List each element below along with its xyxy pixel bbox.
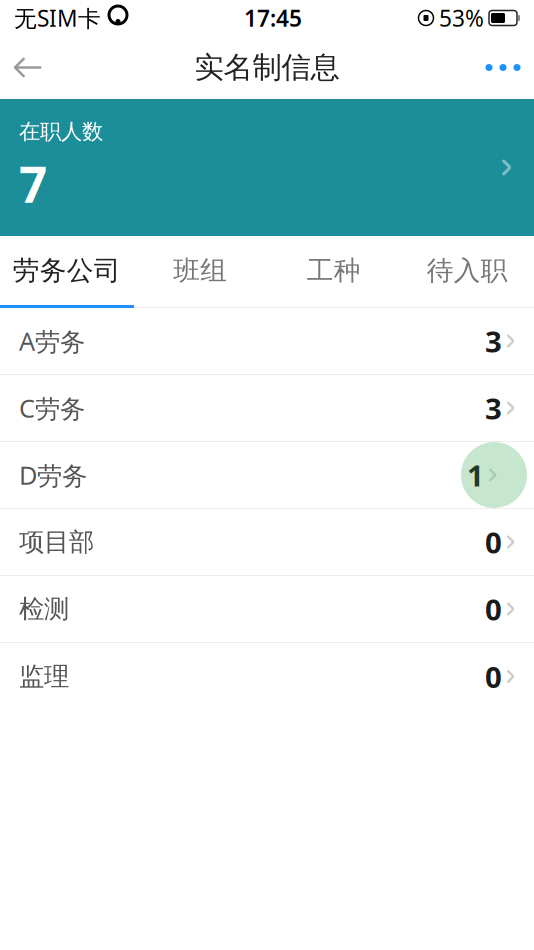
staticText: 3	[485, 321, 502, 360]
button[interactable]: 监理	[0, 643, 534, 710]
staticText: 检测	[19, 593, 69, 624]
staticText: C劳务	[19, 391, 85, 425]
staticText: 17:45	[244, 3, 302, 33]
button[interactable]: 返回	[0, 36, 56, 98]
staticText: 监理	[19, 661, 69, 692]
staticText: 无SIM卡	[14, 3, 101, 33]
button[interactable]: 待入职	[400, 236, 534, 305]
staticText: 在职人数	[19, 119, 103, 145]
staticText: 项目部	[19, 526, 94, 557]
staticText: 0	[485, 522, 502, 561]
staticText: 0	[485, 589, 502, 628]
button[interactable]: 项目部	[0, 509, 534, 576]
staticText: 班组	[173, 254, 227, 287]
staticText: 劳务公司	[13, 254, 121, 287]
button[interactable]: D劳务	[0, 442, 534, 509]
staticText: 3	[485, 388, 502, 427]
button[interactable]: 班组	[133, 236, 267, 305]
staticText: 工种	[307, 254, 361, 287]
staticText: 7	[19, 151, 47, 216]
button[interactable]: C劳务	[0, 375, 534, 442]
button[interactable]: 在职人数	[0, 99, 534, 236]
staticText: A劳务	[19, 324, 85, 358]
button[interactable]: 更多	[472, 36, 534, 98]
staticText: 待入职	[427, 254, 508, 287]
staticText: 1	[467, 455, 484, 494]
button[interactable]: A劳务	[0, 308, 534, 375]
staticText: D劳务	[19, 458, 87, 492]
staticText: 53%	[439, 3, 484, 33]
button[interactable]: 劳务公司	[0, 236, 133, 305]
staticText: 0	[485, 657, 502, 696]
button[interactable]: 检测	[0, 576, 534, 643]
button[interactable]: 工种	[267, 236, 400, 305]
staticText: 实名制信息	[194, 49, 339, 85]
